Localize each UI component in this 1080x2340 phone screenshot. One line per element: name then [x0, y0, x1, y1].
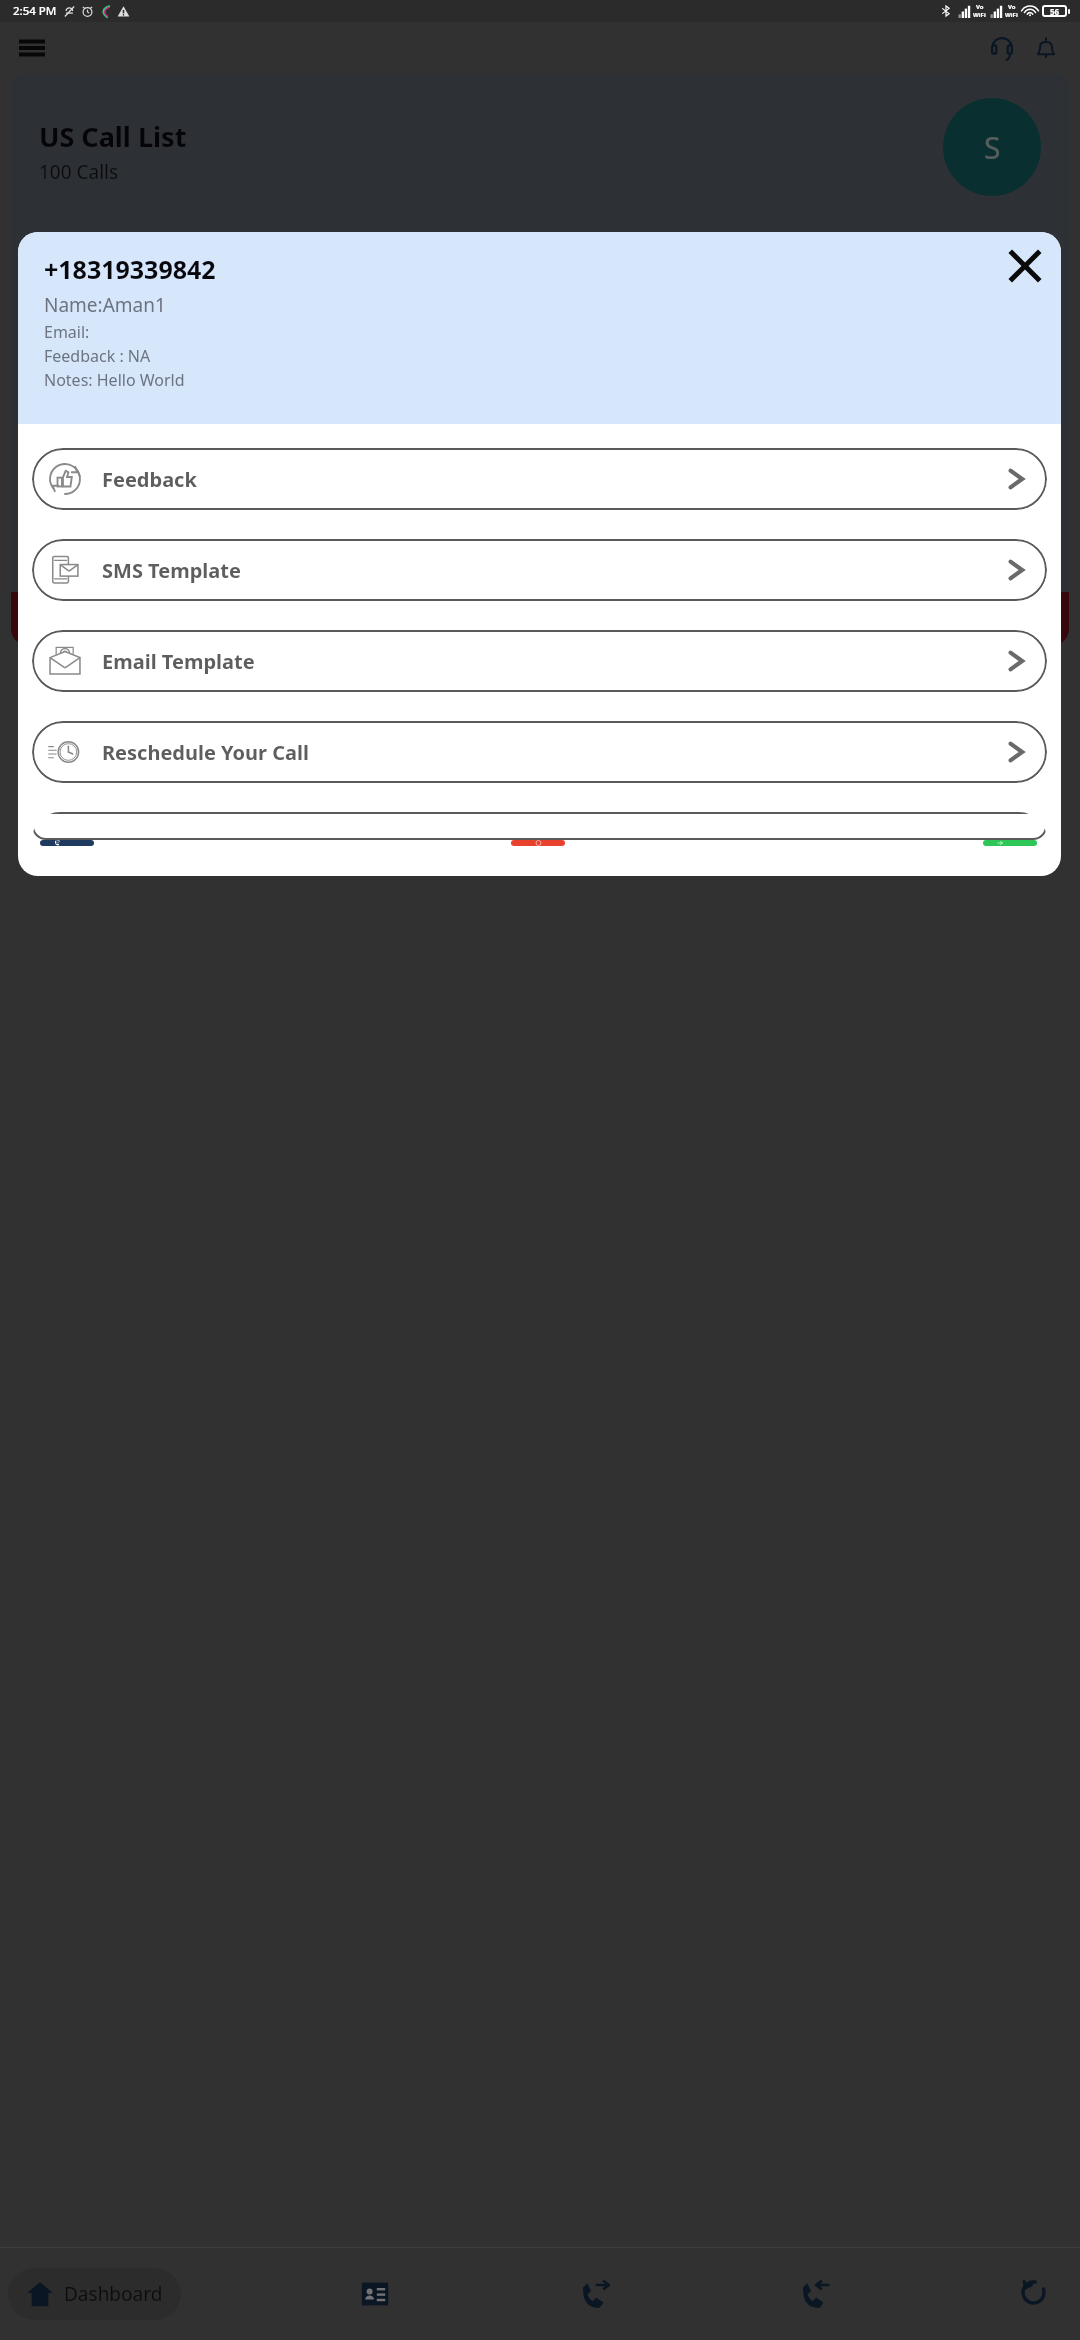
button[interactable]: Call back	[40, 840, 94, 846]
staticText: Feedback	[102, 466, 197, 493]
staticText: Reschedule Your Call	[102, 739, 309, 766]
staticText: Name:Aman1	[44, 292, 166, 318]
button[interactable]: Email Template	[32, 630, 1047, 692]
button[interactable]: Next	[983, 840, 1037, 846]
staticText: +18319339842	[44, 252, 216, 286]
staticText: WiFi	[1005, 11, 1018, 19]
button[interactable]	[32, 812, 1047, 840]
staticText: Email:	[44, 321, 90, 343]
staticText: Feedback : NA	[44, 345, 151, 367]
staticText: Vo	[1008, 3, 1016, 11]
staticText: SMS Template	[102, 557, 241, 584]
staticText: 2:54 PM	[13, 3, 57, 19]
button[interactable]: Reschedule Your Call	[32, 721, 1047, 783]
staticText: Email Template	[102, 648, 255, 675]
button[interactable]: Feedback	[32, 448, 1047, 510]
button[interactable]: Outgoing calls	[568, 2267, 622, 2321]
staticText: S	[984, 127, 1001, 168]
button[interactable]: Dashboard	[8, 2268, 181, 2320]
button[interactable]: Block	[511, 840, 565, 846]
button[interactable]: Add	[1010, 610, 1054, 654]
staticText: WiFi	[973, 11, 986, 19]
button[interactable]: Support	[980, 26, 1024, 70]
button[interactable]: Contacts	[348, 2267, 402, 2321]
button[interactable]: Close	[1001, 242, 1049, 290]
staticText: Notes: Hello World	[44, 369, 185, 391]
staticText: Vo	[976, 3, 984, 11]
button[interactable]: Recent calls	[1008, 2267, 1062, 2321]
staticText: Dashboard	[64, 2281, 163, 2307]
button[interactable]: Notifications	[1024, 26, 1068, 70]
staticText: 100 Calls	[39, 159, 119, 185]
button[interactable]: Incoming calls	[788, 2267, 842, 2321]
button[interactable]: SMS Template	[32, 539, 1047, 601]
staticText: US Call List	[39, 118, 187, 155]
staticText: 56	[1050, 6, 1060, 17]
button[interactable]: Menu	[10, 26, 54, 70]
